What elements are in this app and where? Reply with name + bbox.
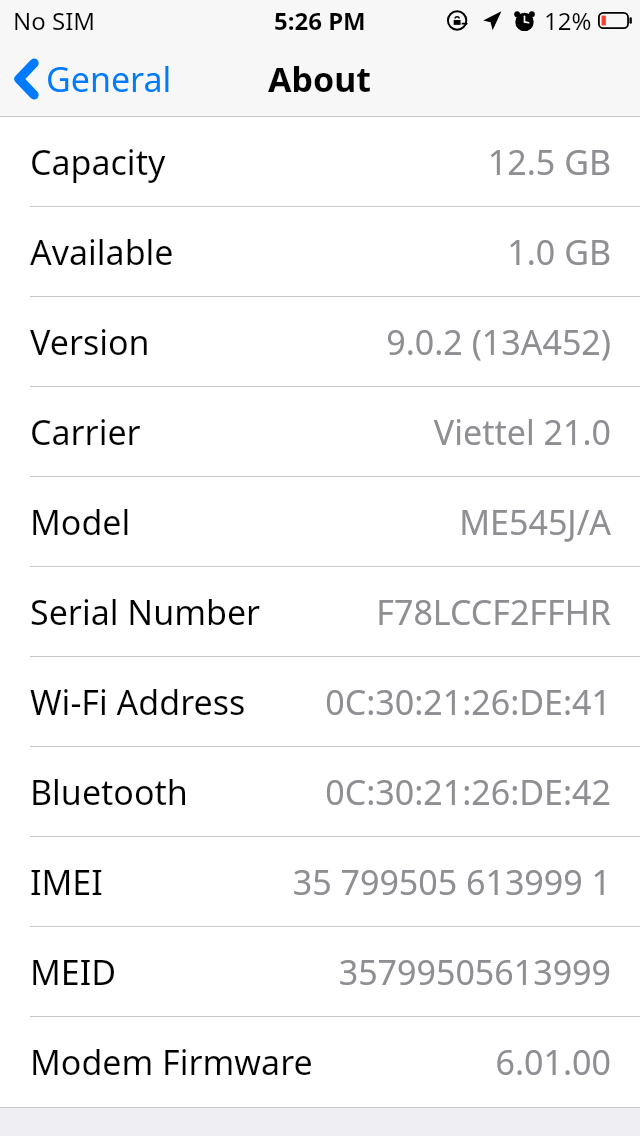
staticText: No SIM <box>13 4 96 37</box>
other: Location in use <box>480 9 503 32</box>
button[interactable]: Version <box>0 297 640 387</box>
staticText: 12% <box>544 4 592 37</box>
button[interactable]: Serial Number <box>0 567 640 657</box>
staticText: IMEI <box>30 859 103 905</box>
button[interactable]: IMEI <box>0 837 640 927</box>
other: Battery 12 percent <box>598 12 632 29</box>
staticText: 6.01.00 <box>495 1039 611 1085</box>
button[interactable]: Capacity <box>0 117 640 207</box>
button[interactable]: General <box>0 48 186 110</box>
staticText: Bluetooth <box>30 769 188 815</box>
button[interactable]: MEID <box>0 927 640 1017</box>
other: Rotation lock <box>447 9 470 32</box>
staticText: Version <box>30 319 150 365</box>
staticText: Model <box>30 499 131 545</box>
staticText: MEID <box>30 949 117 995</box>
staticText: Carrier <box>30 409 141 455</box>
button[interactable]: Bluetooth <box>0 747 640 837</box>
staticText: 1.0 GB <box>507 229 611 275</box>
staticText: 0C:30:21:26:DE:42 <box>325 769 611 815</box>
staticText: Wi-Fi Address <box>30 679 246 725</box>
staticText: 0C:30:21:26:DE:41 <box>325 679 611 725</box>
other: Alarm set <box>513 9 536 32</box>
staticText: 9.0.2 (13A452) <box>386 319 611 365</box>
staticText: Capacity <box>30 139 166 185</box>
button[interactable]: Wi-Fi Address <box>0 657 640 747</box>
staticText: 5:26 PM <box>274 4 366 37</box>
staticText: 12.5 GB <box>487 139 611 185</box>
staticText: Available <box>30 229 174 275</box>
button[interactable]: Modem Firmware <box>0 1017 640 1107</box>
staticText: Serial Number <box>30 589 261 635</box>
staticText: General <box>46 56 172 102</box>
button[interactable]: Available <box>0 207 640 297</box>
staticText: About <box>268 56 372 102</box>
button[interactable]: Carrier <box>0 387 640 477</box>
staticText: Viettel 21.0 <box>433 409 611 455</box>
staticText: 35799505613999 <box>338 949 611 995</box>
staticText: ME545J/A <box>459 499 611 545</box>
staticText: F78LCCF2FFHR <box>376 589 611 635</box>
staticText: 35 799505 613999 1 <box>292 859 611 905</box>
staticText: Modem Firmware <box>30 1039 313 1085</box>
button[interactable]: Model <box>0 477 640 567</box>
